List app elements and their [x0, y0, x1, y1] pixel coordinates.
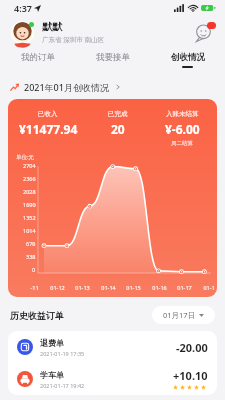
- staticText: 676: [26, 240, 36, 247]
- staticText: +10.10: [173, 368, 208, 383]
- staticText: 默默: [42, 20, 62, 33]
- button[interactable]: 退费单: [8, 331, 217, 363]
- staticText: 2366: [23, 175, 36, 182]
- staticText: 0: [32, 266, 36, 273]
- button[interactable]: 2021年01月创收情况: [10, 80, 225, 94]
- staticText: 01-16: [152, 284, 167, 291]
- staticText: -20.00: [176, 340, 208, 355]
- button[interactable]: 消息: [193, 21, 215, 43]
- staticText: 周二结算: [171, 140, 193, 147]
- staticText: ¥11477.94: [19, 121, 78, 137]
- staticText: 2021-01-17 19:42: [40, 382, 85, 389]
- button[interactable]: 创收情况: [150, 48, 225, 74]
- staticText: 2028: [23, 188, 36, 195]
- staticText: 1352: [23, 214, 36, 221]
- staticText: 已完成: [108, 110, 128, 118]
- staticText: 01-17: [177, 284, 192, 291]
- staticText: 01-1: [203, 284, 215, 291]
- staticText: 2704: [23, 162, 36, 169]
- button[interactable]: [10, 20, 35, 45]
- staticText: 1014: [23, 227, 36, 234]
- staticText: 单位:元: [16, 153, 34, 161]
- staticText: 学车单: [40, 370, 64, 380]
- staticText: 01-15: [126, 284, 141, 291]
- staticText: 1690: [23, 201, 36, 208]
- button[interactable]: 学车单: [8, 363, 217, 395]
- staticText: 入账未结算: [166, 110, 199, 118]
- staticText: 4:37: [14, 2, 32, 14]
- staticText: 我要接单: [96, 52, 130, 63]
- staticText: 01-14: [101, 284, 116, 291]
- staticText: 01月17日: [163, 310, 196, 320]
- staticText: 2021年01月创收情况: [24, 81, 109, 93]
- staticText: 338: [26, 253, 36, 260]
- staticText: 01-12: [50, 284, 65, 291]
- staticText: 历史收益订单: [10, 310, 64, 321]
- staticText: 2021-01-19 17:35: [40, 350, 85, 357]
- staticText: 退费单: [40, 338, 64, 348]
- staticText: 广东省 深圳市 南山区: [42, 35, 104, 44]
- button[interactable]: 我要接单: [75, 48, 150, 74]
- staticText: 01-13: [75, 284, 90, 291]
- button[interactable]: 已收入: [8, 99, 217, 297]
- staticText: -11: [30, 284, 39, 291]
- staticText: 已收入: [38, 110, 58, 118]
- button[interactable]: 我的订单: [0, 48, 75, 74]
- staticText: ¥-6.00: [165, 121, 200, 137]
- staticText: 我的订单: [21, 52, 55, 63]
- button[interactable]: 01月17日: [152, 306, 215, 324]
- staticText: 20: [111, 121, 125, 137]
- staticText: 创收情况: [171, 52, 205, 63]
